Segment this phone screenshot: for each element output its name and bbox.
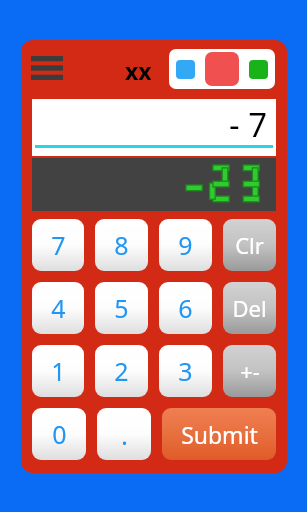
staticText: 5 xyxy=(114,291,129,325)
staticText: 6 xyxy=(178,291,193,325)
button[interactable]: Del xyxy=(223,282,276,334)
button[interactable]: +- xyxy=(223,345,276,397)
staticText: 2 xyxy=(114,354,129,388)
button[interactable]: 8 xyxy=(95,219,148,271)
staticText: 3 xyxy=(178,354,193,388)
staticText: +- xyxy=(240,356,260,386)
button[interactable]: 5 xyxy=(95,282,148,334)
staticText: 8 xyxy=(114,228,129,262)
button[interactable]: 0 xyxy=(32,408,86,460)
button[interactable]: 6 xyxy=(159,282,212,334)
staticText: Submit xyxy=(181,419,258,450)
button[interactable]: Submit xyxy=(162,408,276,460)
button[interactable]: - 7 xyxy=(32,99,276,156)
staticText: 7 xyxy=(51,228,66,262)
button[interactable]: 4 xyxy=(32,282,84,334)
staticText: - 7 xyxy=(229,102,268,147)
staticText: Clr xyxy=(235,230,264,260)
button[interactable]: 9 xyxy=(159,219,212,271)
staticText: 1 xyxy=(51,354,66,388)
button[interactable]: 7 xyxy=(32,219,84,271)
staticText: 0 xyxy=(52,417,67,451)
button[interactable]: Clr xyxy=(223,219,276,271)
staticText: . xyxy=(121,417,128,452)
button[interactable]: 3 xyxy=(159,345,212,397)
button[interactable]: . xyxy=(97,408,151,460)
button[interactable]: 1 xyxy=(32,345,84,397)
staticText: Del xyxy=(232,293,267,323)
button[interactable]: Color selector xyxy=(169,49,275,89)
staticText: 9 xyxy=(178,228,193,262)
staticText: xx xyxy=(125,55,152,86)
button[interactable]: 2 xyxy=(95,345,148,397)
staticText: 4 xyxy=(51,291,66,325)
button[interactable]: Menu xyxy=(29,50,65,86)
